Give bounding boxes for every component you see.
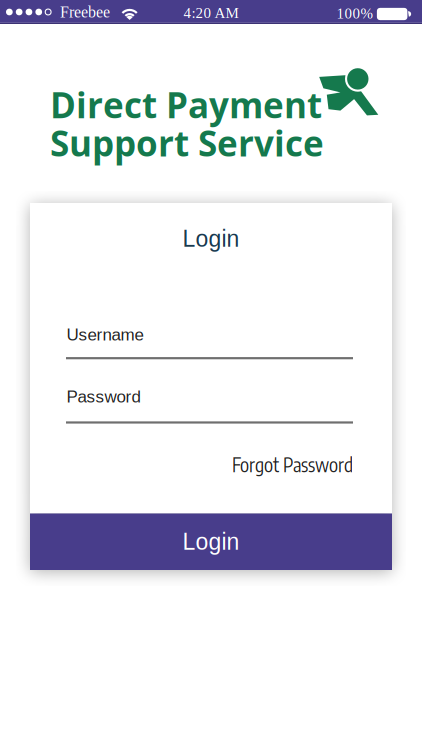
staticText: 4:20 AM xyxy=(183,5,238,21)
staticText: Username xyxy=(66,325,143,344)
button[interactable]: Username xyxy=(66,325,353,359)
staticText: Forgot Password xyxy=(232,453,353,476)
button[interactable]: Forgot Password xyxy=(232,453,353,476)
staticText: Login xyxy=(182,529,239,555)
staticText: Password xyxy=(66,387,140,406)
staticText: Freebee xyxy=(60,3,110,21)
staticText: Direct Payment Support Service xyxy=(50,86,324,162)
staticText: Login xyxy=(182,226,239,252)
button[interactable]: Password xyxy=(66,387,353,424)
button[interactable]: Login xyxy=(30,513,392,570)
staticText: 100% xyxy=(336,5,372,22)
